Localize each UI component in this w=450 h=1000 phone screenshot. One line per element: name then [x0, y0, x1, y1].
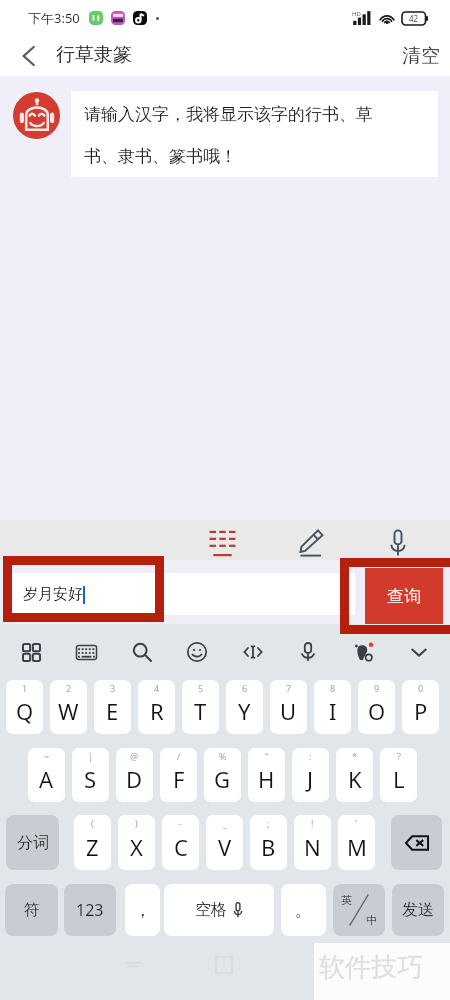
staticText: S — [84, 764, 97, 794]
button[interactable]: Handwriting — [289, 522, 331, 564]
button[interactable]: ( — [74, 815, 111, 870]
button[interactable]: 3 — [94, 680, 131, 734]
staticText: M — [347, 832, 367, 862]
button[interactable]: % — [204, 748, 241, 802]
staticText: _ — [223, 817, 227, 829]
staticText: 查询 — [387, 586, 421, 607]
staticText: J — [307, 764, 314, 794]
button[interactable]: Back — [6, 36, 50, 76]
staticText: 行草隶篆 — [56, 43, 132, 67]
staticText: U — [280, 696, 297, 726]
button[interactable]: Pinyin — [201, 522, 243, 564]
button[interactable]: Switch language — [333, 884, 385, 936]
staticText: @ — [130, 750, 139, 762]
staticText: 6 — [242, 682, 248, 694]
button[interactable]: : — [292, 748, 329, 802]
staticText: B — [261, 832, 276, 862]
staticText: R — [150, 696, 164, 726]
staticText: 软件技巧 — [319, 951, 423, 984]
button[interactable]: ， — [125, 884, 160, 936]
staticText: 请输入汉字，我将显示该字的行书、草书、隶书、篆书哦！ — [84, 104, 390, 167]
staticText: Q — [16, 696, 34, 726]
staticText: ' — [355, 817, 358, 829]
button[interactable]: Hide keyboard — [399, 632, 439, 672]
button[interactable]: 8 — [314, 680, 351, 734]
staticText: Z — [86, 832, 99, 862]
button[interactable]: 0 — [402, 680, 439, 734]
staticText: ? — [397, 750, 401, 762]
button[interactable]: 分词 — [6, 815, 59, 870]
button[interactable]: _ — [206, 815, 243, 870]
staticText: % — [219, 750, 227, 762]
staticText: H — [258, 764, 275, 794]
button[interactable]: 发送 — [392, 884, 444, 936]
staticText: | — [88, 750, 93, 762]
staticText: 发送 — [402, 900, 434, 920]
button[interactable]: Voice — [288, 632, 328, 672]
staticText: - — [179, 817, 182, 829]
button[interactable]: ~ — [28, 748, 65, 802]
staticText: 中 — [366, 913, 377, 927]
staticText: : — [309, 750, 312, 762]
button[interactable]: Backspace — [391, 815, 442, 870]
button[interactable]: Apps — [11, 632, 51, 672]
button[interactable]: 查询 — [365, 568, 443, 624]
staticText: 123 — [76, 899, 104, 921]
button[interactable]: 1 — [6, 680, 43, 734]
button[interactable]: Search — [122, 632, 162, 672]
button[interactable]: Emoji — [177, 632, 217, 672]
staticText: W — [58, 696, 79, 726]
button[interactable]: 符 — [5, 884, 58, 936]
staticText: / — [177, 750, 181, 762]
button[interactable]: 2 — [50, 680, 87, 734]
button[interactable]: 4 — [138, 680, 175, 734]
staticText: C — [174, 832, 188, 862]
button[interactable]: 123 — [64, 884, 116, 936]
staticText: 5 — [198, 682, 204, 694]
staticText: ~ — [44, 750, 50, 762]
staticText: ( — [91, 817, 94, 829]
staticText: 空格 — [195, 900, 227, 920]
button[interactable]: Cursor — [233, 632, 273, 672]
button[interactable]: 9 — [358, 680, 395, 734]
staticText: ， — [134, 900, 151, 921]
button[interactable]: ) — [118, 815, 155, 870]
button[interactable]: 6 — [226, 680, 263, 734]
staticText: HD — [352, 10, 361, 18]
button[interactable]: 空格 — [164, 884, 274, 936]
button[interactable]: * — [336, 748, 373, 802]
staticText: ! — [311, 817, 314, 829]
button[interactable]: 5 — [182, 680, 219, 734]
staticText: K — [348, 764, 362, 794]
staticText: E — [106, 696, 119, 726]
staticText: 英 — [341, 893, 352, 907]
button[interactable]: @ — [116, 748, 153, 802]
staticText: ) — [135, 817, 138, 829]
button[interactable]: Bot avatar — [13, 92, 60, 139]
button[interactable]: / — [160, 748, 197, 802]
staticText: D — [126, 764, 143, 794]
button[interactable]: ; — [250, 815, 287, 870]
button[interactable]: 7 — [270, 680, 307, 734]
staticText: I — [329, 696, 337, 726]
staticText: P — [414, 696, 428, 726]
staticText: 3 — [110, 682, 116, 694]
button[interactable]: - — [162, 815, 199, 870]
button[interactable]: ? — [380, 748, 417, 802]
button[interactable]: | — [72, 748, 109, 802]
button[interactable]: ! — [294, 815, 331, 870]
staticText: G — [214, 764, 231, 794]
button[interactable]: Sticker — [344, 632, 384, 672]
button[interactable]: Voice input — [377, 522, 419, 564]
button[interactable]: " — [248, 748, 285, 802]
button[interactable]: 。 — [281, 884, 326, 936]
button[interactable]: Keyboard layout — [66, 632, 106, 672]
button[interactable]: 清空 — [386, 36, 450, 76]
staticText: 岁月安好 — [23, 585, 83, 604]
button[interactable]: 岁月安好 — [5, 573, 355, 615]
staticText: 1 — [22, 682, 28, 694]
button[interactable]: ' — [338, 815, 375, 870]
staticText: Y — [238, 696, 251, 726]
